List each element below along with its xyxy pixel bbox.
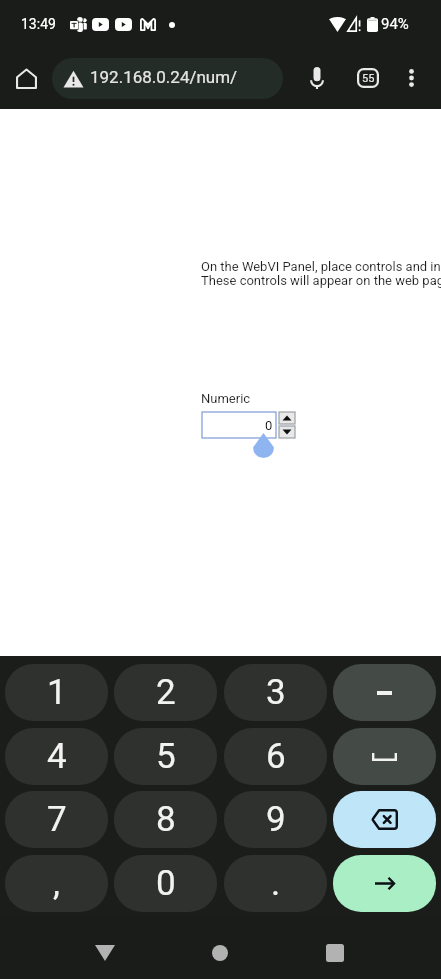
staticText: 9 (266, 799, 286, 840)
button[interactable]: Backspace (333, 791, 436, 848)
staticText: 55 (362, 72, 375, 85)
button[interactable]: 0 (114, 855, 217, 912)
button[interactable]: Recent apps (315, 933, 355, 973)
button[interactable]: . (224, 855, 327, 912)
button[interactable]: 192.168.0.24/num/ (52, 58, 283, 99)
staticText: These controls will appear on the web pa… (201, 273, 441, 288)
button[interactable]: 4 (5, 728, 108, 785)
button[interactable]: Increase (279, 412, 295, 424)
button[interactable]: 0 (202, 412, 276, 438)
staticText: 94% (381, 15, 409, 33)
staticText: 3 (266, 672, 286, 713)
button[interactable]: Minus (333, 664, 436, 721)
button[interactable]: 6 (224, 728, 327, 785)
staticText: , (53, 863, 60, 904)
button[interactable]: Home (6, 58, 46, 98)
staticText: 1 (47, 672, 67, 713)
button[interactable]: 3 (224, 664, 327, 721)
staticText: 7 (47, 799, 67, 840)
button[interactable]: Voice search (297, 58, 337, 98)
staticText: 192.168.0.24/num/ (90, 67, 238, 87)
staticText: 6 (266, 736, 286, 777)
staticText: 13:49 (21, 16, 56, 32)
button[interactable]: More options (391, 58, 431, 98)
button[interactable]: , (5, 855, 108, 912)
button[interactable]: 8 (114, 791, 217, 848)
staticText: Numeric (201, 391, 251, 406)
button[interactable]: 7 (5, 791, 108, 848)
staticText: On the WebVI Panel, place controls and i… (201, 259, 441, 274)
button[interactable]: Back (85, 933, 125, 973)
button[interactable]: 9 (224, 791, 327, 848)
staticText: 2 (156, 672, 176, 713)
staticText: 8 (156, 799, 176, 840)
button[interactable]: 5 (114, 728, 217, 785)
button[interactable]: Decrease (279, 426, 295, 438)
button[interactable]: 2 (114, 664, 217, 721)
staticText: 5 (156, 736, 176, 777)
button[interactable]: Space (333, 728, 436, 785)
staticText: 0 (156, 863, 176, 904)
staticText: 0 (265, 418, 273, 433)
staticText: . (271, 863, 281, 904)
button[interactable]: Enter (333, 855, 436, 912)
button[interactable]: Home (200, 933, 240, 973)
button[interactable]: 1 (5, 664, 108, 721)
button[interactable]: Tabs (348, 58, 388, 98)
staticText: 4 (47, 736, 67, 777)
